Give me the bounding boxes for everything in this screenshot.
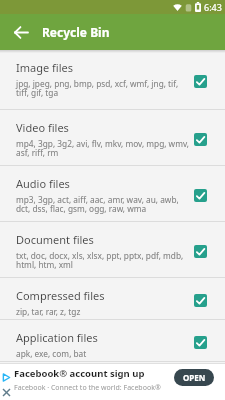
staticText: Image files	[16, 60, 73, 75]
button[interactable]: Document files	[0, 222, 225, 277]
staticText: Video files	[16, 120, 69, 135]
button[interactable]: Compressed files	[0, 278, 225, 319]
button[interactable]	[194, 336, 207, 349]
staticText: mp3, 3gp, act, aiff, aac, amr, wav, au, …	[16, 194, 179, 215]
button[interactable]: OPEN	[174, 369, 214, 386]
button[interactable]: Application files	[0, 320, 225, 361]
button[interactable]	[194, 133, 207, 146]
staticText: apk, exe, com, bat	[16, 348, 87, 359]
button[interactable]: Facebook® account sign up	[0, 363, 225, 400]
staticText: Audio files	[16, 176, 70, 191]
button[interactable]	[0, 14, 42, 50]
staticText: zip, tar, rar, z, tgz	[16, 306, 81, 317]
staticText: mp4, 3gp, 3g2, avi, flv, mkv, mov, mpg, …	[16, 138, 189, 159]
staticText: jpg, jpeg, png, bmp, psd, xcf, wmf, jng,…	[16, 78, 179, 99]
button[interactable]: Image files	[0, 50, 225, 109]
staticText: Compressed files	[16, 288, 105, 303]
staticText: Document files	[16, 232, 94, 247]
button[interactable]	[194, 245, 207, 258]
button[interactable]	[194, 294, 207, 307]
staticText: txt, doc, docx, xls, xlsx, ppt, pptx, pd…	[16, 250, 184, 271]
staticText: Application files	[16, 330, 98, 345]
staticText: Recycle Bin	[42, 24, 110, 40]
staticText: Facebook® account sign up	[14, 367, 145, 380]
button[interactable]	[194, 75, 207, 88]
button[interactable]: Video files	[0, 110, 225, 165]
staticText: Facebook · Connect to the world: Faceboo…	[14, 383, 161, 393]
button[interactable]	[194, 189, 207, 202]
button[interactable]: Audio files	[0, 166, 225, 221]
staticText: OPEN	[183, 372, 206, 383]
staticText: 6:43	[204, 1, 222, 13]
